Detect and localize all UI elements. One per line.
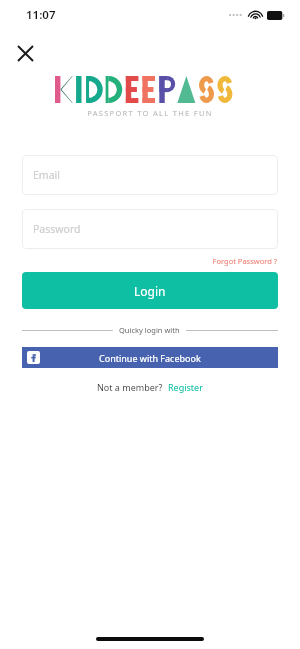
staticText: Email bbox=[33, 168, 60, 182]
button[interactable]: Login bbox=[22, 272, 278, 309]
button[interactable]: Forgot Password ? bbox=[0, 256, 277, 266]
staticText: Quicky login with bbox=[119, 325, 180, 335]
button[interactable]: Continue with Facebook bbox=[22, 347, 278, 368]
staticText: Register bbox=[168, 381, 203, 393]
staticText: PASSPORT TO ALL THE FUN bbox=[0, 108, 300, 118]
button[interactable]: Register bbox=[168, 381, 203, 393]
staticText: Login bbox=[134, 283, 166, 299]
button[interactable]: Email bbox=[22, 155, 278, 195]
staticText: Password bbox=[33, 222, 81, 236]
button[interactable]: Close bbox=[8, 36, 42, 70]
staticText: Continue with Facebook bbox=[99, 352, 201, 364]
staticText: Not a member? bbox=[97, 381, 163, 393]
button[interactable]: Password bbox=[22, 209, 278, 249]
staticText: 11:07 bbox=[26, 7, 56, 23]
